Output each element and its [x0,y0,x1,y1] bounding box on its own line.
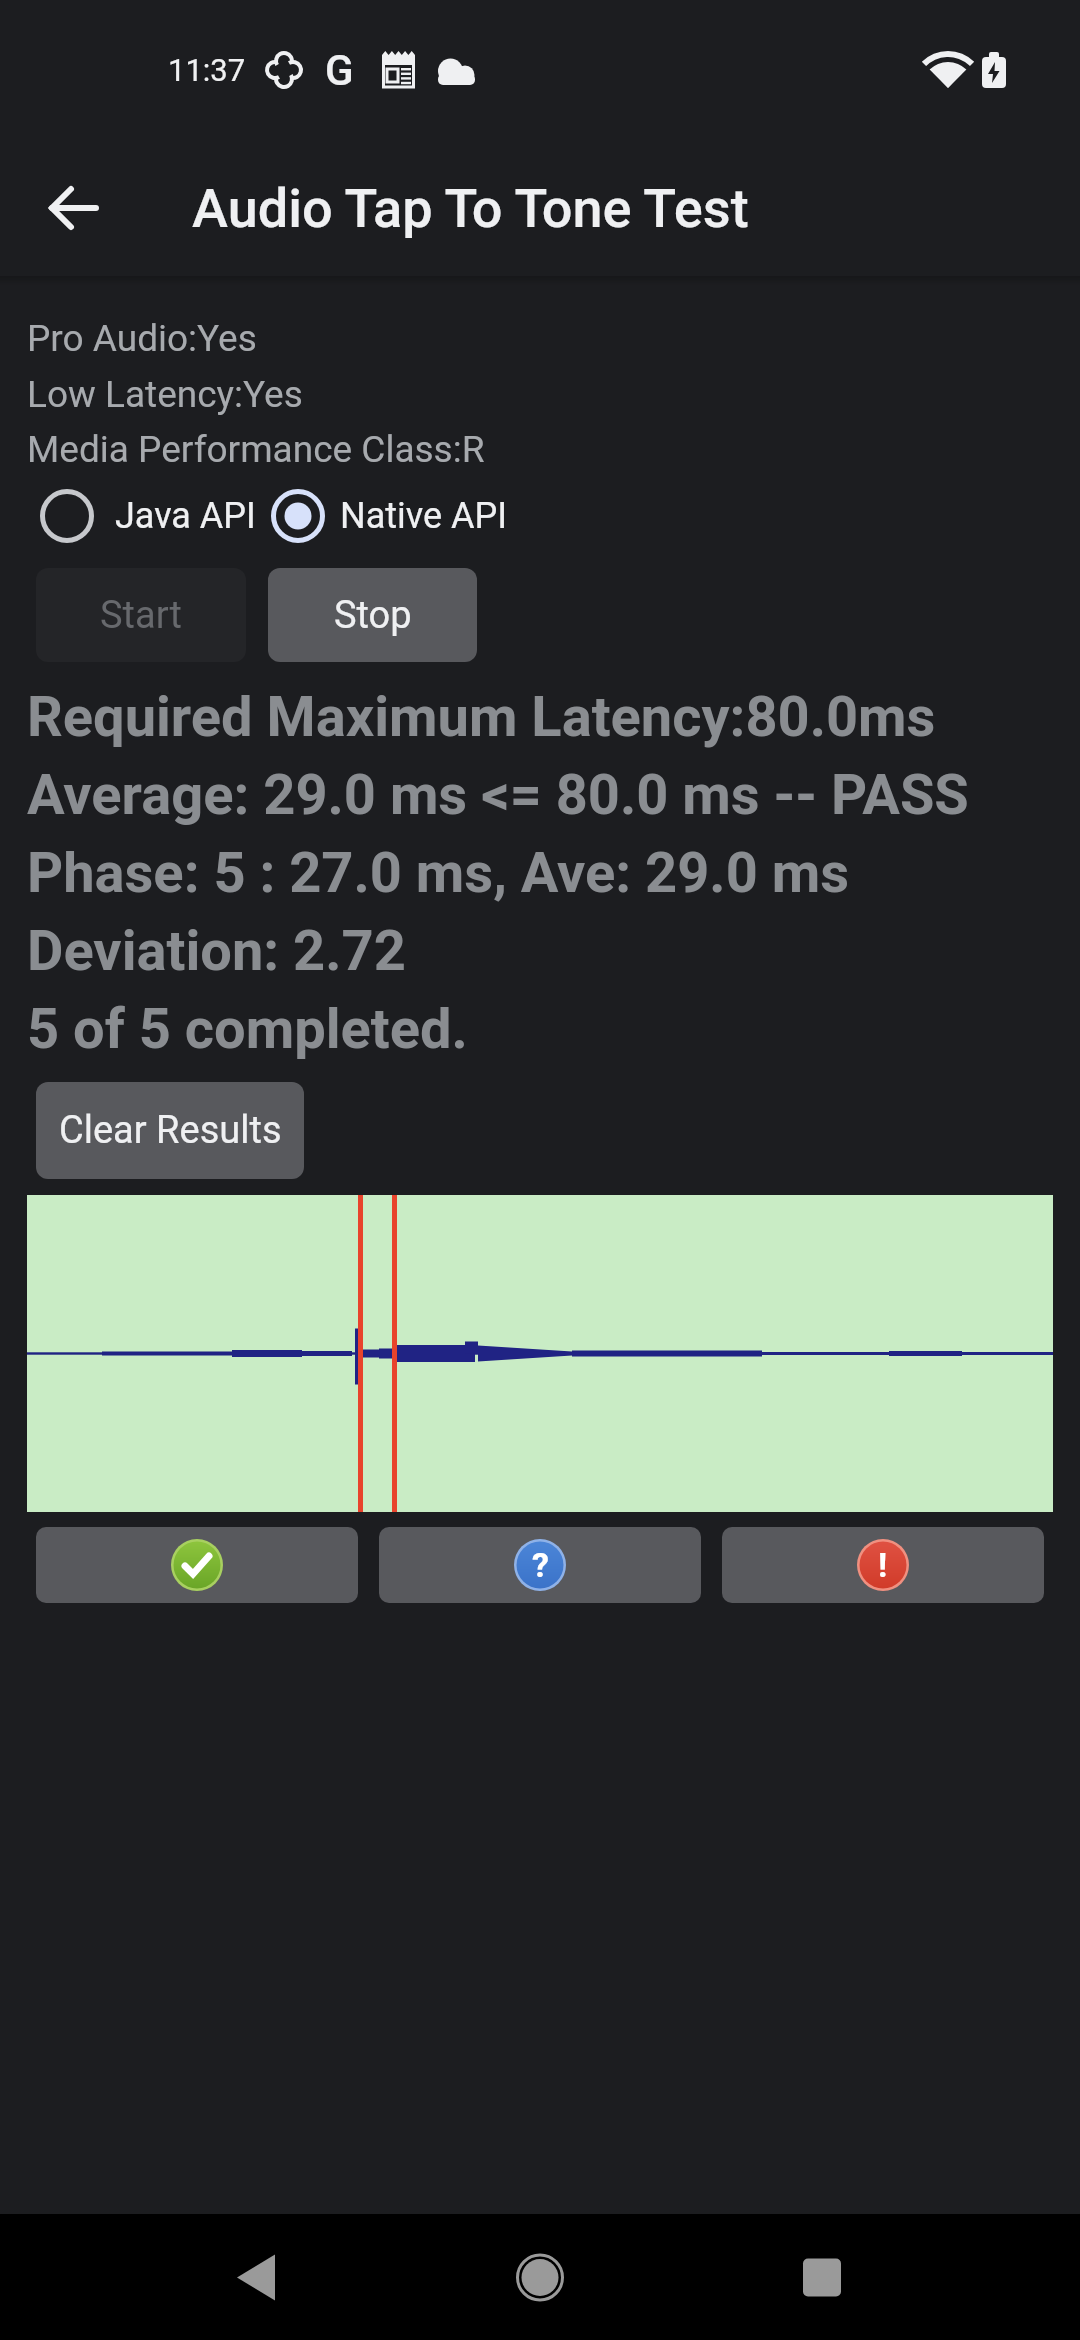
button[interactable] [720,2214,1080,2340]
button[interactable]: ! [722,1527,1044,1603]
staticText: Required Maximum Latency:80.0ms Average:… [27,684,969,1061]
staticText: Pro Audio:Yes Low Latency:Yes Media Perf… [27,317,485,471]
staticText: G [325,46,354,95]
staticText: 11:37 [168,52,246,88]
staticText: Java API [115,495,256,537]
staticText: Start [100,593,182,638]
button[interactable]: Stop [268,568,477,662]
staticText: ? [532,1545,549,1585]
button[interactable]: Start [36,568,246,662]
staticText: ! [878,1545,888,1585]
button[interactable]: Clear Results [36,1082,304,1179]
button[interactable]: ? [379,1527,701,1603]
button[interactable] [42,177,104,239]
staticText: Audio Tap To Tone Test [192,177,749,240]
staticText: Native API [340,495,508,537]
button[interactable] [0,2214,360,2340]
button[interactable] [360,2214,720,2340]
button[interactable]: Native API [271,489,508,543]
staticText: Clear Results [59,1108,282,1153]
button[interactable]: Java API [40,489,256,543]
button[interactable] [36,1527,358,1603]
staticText: Stop [334,593,412,638]
